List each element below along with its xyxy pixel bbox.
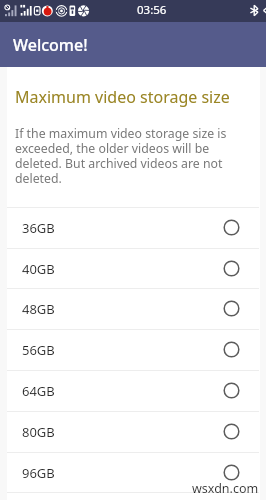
staticText: 36GB: [22, 219, 55, 237]
button[interactable]: 96GB: [0, 452, 266, 493]
staticText: Welcome!: [13, 34, 88, 56]
button[interactable]: 56GB: [0, 329, 266, 370]
button[interactable]: 48GB: [0, 288, 266, 329]
staticText: 64GB: [22, 382, 55, 400]
button[interactable]: 36GB: [0, 207, 266, 248]
staticText: Maximum video storage size: [15, 86, 230, 108]
button[interactable]: 40GB: [0, 248, 266, 289]
staticText: 03:56: [137, 2, 167, 18]
button[interactable]: 80GB: [0, 411, 266, 452]
staticText: 80GB: [22, 423, 55, 441]
staticText: 48GB: [22, 300, 55, 318]
staticText: wsxdn.com: [192, 480, 259, 497]
staticText: 96GB: [22, 464, 55, 482]
staticText: 40GB: [22, 260, 55, 278]
staticText: If the maximum video storage size is exc…: [15, 125, 243, 187]
button[interactable]: 64GB: [0, 370, 266, 411]
staticText: 56GB: [22, 341, 55, 359]
button[interactable]: Welcome!: [0, 22, 266, 67]
